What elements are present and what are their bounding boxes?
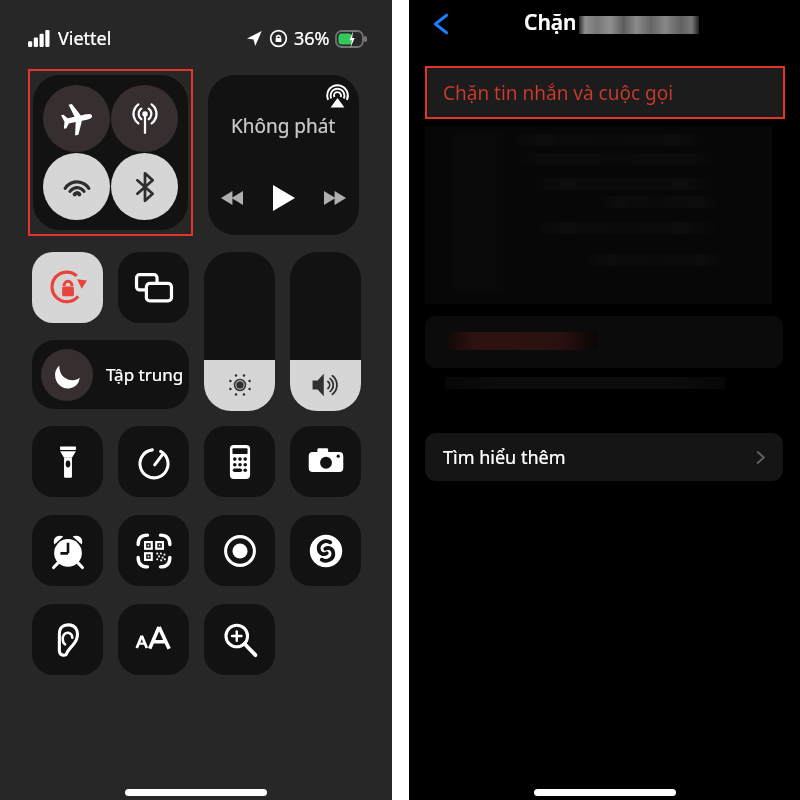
button[interactable]: Camera (290, 426, 361, 497)
button[interactable]: Volume (290, 252, 361, 411)
button[interactable]: Shazam (290, 515, 361, 586)
button[interactable]: Hearing (32, 604, 103, 675)
button[interactable]: Flashlight (32, 426, 103, 497)
button[interactable]: Screen Mirroring (118, 252, 189, 323)
button[interactable]: Brightness (204, 252, 275, 411)
button[interactable]: Screen Record (204, 515, 275, 586)
button[interactable]: Chặn tin nhắn và cuộc gọi (425, 66, 785, 119)
button[interactable]: Wi-Fi (43, 153, 110, 220)
staticText: Tập trung (106, 363, 184, 386)
button[interactable]: Play (273, 185, 295, 211)
button[interactable]: Tìm hiểu thêm (425, 433, 783, 481)
button[interactable]: Text Size (118, 604, 189, 675)
staticText: Chặn tin nhắn và cuộc gọi (443, 80, 674, 106)
button[interactable]: Rotation Lock (32, 252, 103, 323)
staticText: 36% (294, 26, 330, 51)
button[interactable]: Magnifier (204, 604, 275, 675)
staticText: Viettel (58, 26, 112, 51)
button[interactable]: Tập trung (32, 340, 189, 409)
button[interactable]: AirPlay (208, 75, 359, 235)
button[interactable]: Airplane Mode (43, 85, 110, 152)
button[interactable]: Next (324, 191, 346, 205)
staticText: Không phát (231, 113, 336, 139)
staticText: Tìm hiểu thêm (443, 445, 566, 470)
button[interactable]: Timer (118, 426, 189, 497)
button[interactable] (425, 316, 783, 368)
button[interactable]: QR Code Scanner (118, 515, 189, 586)
button[interactable]: Back (421, 4, 461, 44)
staticText: Chặn (524, 8, 582, 37)
button[interactable]: Calculator (204, 426, 275, 497)
button[interactable]: Bluetooth (111, 153, 178, 220)
button[interactable]: Alarm (32, 515, 103, 586)
button[interactable]: Cellular Data (111, 85, 178, 152)
button[interactable]: AirPlay (326, 85, 349, 108)
button[interactable]: Previous (221, 191, 243, 205)
